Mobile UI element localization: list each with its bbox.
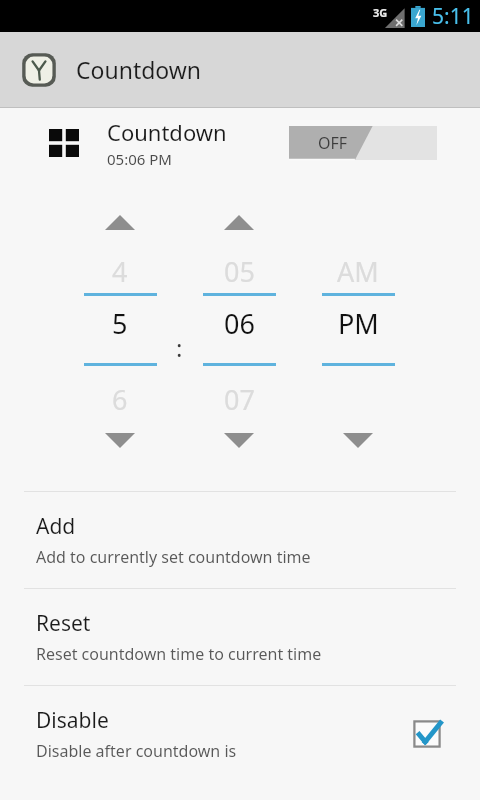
button[interactable]: Increment — [217, 208, 261, 236]
staticText: PM — [338, 305, 379, 342]
button[interactable]: 06 — [193, 299, 285, 347]
staticText: 3G — [373, 5, 388, 20]
staticText: : — [176, 331, 183, 364]
button[interactable]: Decrement — [217, 426, 261, 454]
staticText: 4 — [112, 253, 128, 290]
button[interactable]: Increment — [98, 208, 142, 236]
staticText: 07 — [224, 381, 255, 418]
button[interactable]: PM — [312, 299, 404, 347]
staticText: 5 — [112, 305, 128, 342]
button[interactable]: Add — [0, 492, 480, 588]
button[interactable]: Toggle countdown off — [289, 126, 437, 160]
button[interactable]: Disable after countdown toggle — [410, 717, 444, 751]
staticText: AM — [337, 253, 379, 290]
button[interactable]: 5 — [74, 299, 166, 347]
button[interactable]: Decrement — [98, 426, 142, 454]
button[interactable]: Reset — [0, 589, 480, 685]
staticText: Disable after countdown is — [36, 740, 237, 762]
staticText: Countdown — [107, 117, 227, 147]
staticText: 06 — [224, 305, 255, 342]
staticText: 6 — [112, 381, 128, 418]
staticText: OFF — [318, 132, 348, 154]
button[interactable]: Disable — [0, 686, 480, 782]
staticText: Countdown — [76, 54, 202, 85]
staticText: Add to currently set countdown time — [36, 546, 311, 568]
staticText: Reset — [36, 609, 91, 638]
staticText: Add — [36, 512, 76, 541]
staticText: 05:06 PM — [107, 149, 172, 169]
staticText: Disable — [36, 706, 109, 735]
staticText: Reset countdown time to current time — [36, 643, 322, 665]
staticText: 5:11 — [432, 2, 474, 31]
staticText: 05 — [224, 253, 255, 290]
button[interactable]: Countdown — [0, 108, 480, 178]
button[interactable]: Decrement — [336, 426, 380, 454]
